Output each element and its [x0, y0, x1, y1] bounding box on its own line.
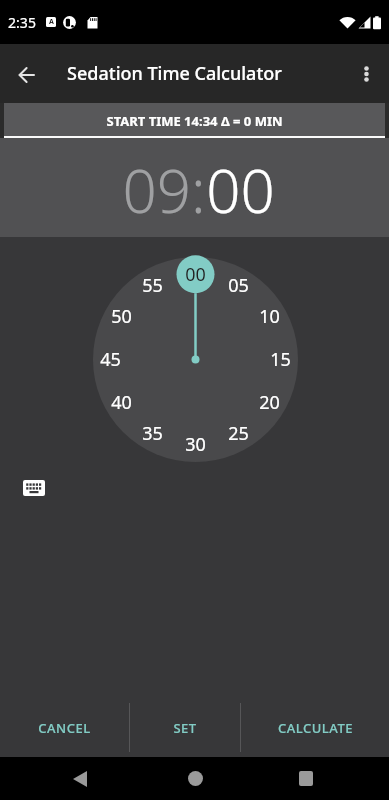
button[interactable] — [13, 470, 55, 506]
button[interactable]: SET — [130, 703, 240, 752]
staticText: 00 — [206, 149, 275, 231]
staticText: 25 — [228, 421, 249, 446]
staticText: 40 — [111, 390, 132, 415]
staticText: A — [49, 17, 54, 27]
staticText: 55 — [142, 273, 163, 298]
staticText: 10 — [259, 304, 280, 329]
button[interactable] — [7, 55, 47, 95]
staticText: 09: — [122, 149, 206, 231]
staticText: SET — [173, 719, 197, 737]
staticText: CANCEL — [38, 719, 91, 737]
staticText: Sedation Time Calculator — [67, 61, 282, 86]
staticText: 2:35 — [8, 13, 36, 32]
button[interactable]: CALCULATE — [241, 703, 389, 752]
button[interactable]: START TIME 14:34 Δ = 0 MIN — [4, 103, 385, 138]
staticText: 15 — [270, 347, 291, 372]
staticText: 05 — [228, 273, 249, 298]
staticText: 50 — [111, 304, 132, 329]
button[interactable] — [60, 757, 100, 800]
staticText: START TIME 14:34 Δ = 0 MIN — [106, 112, 283, 130]
button[interactable] — [286, 757, 326, 800]
staticText: CALCULATE — [278, 719, 353, 737]
staticText: 30 — [185, 432, 206, 457]
staticText: 35 — [142, 421, 163, 446]
staticText: 00 — [185, 262, 206, 287]
button[interactable]: CANCEL — [0, 703, 129, 752]
button[interactable] — [348, 56, 384, 92]
staticText: 20 — [259, 390, 280, 415]
staticText: 45 — [100, 347, 121, 372]
button[interactable] — [175, 757, 215, 800]
